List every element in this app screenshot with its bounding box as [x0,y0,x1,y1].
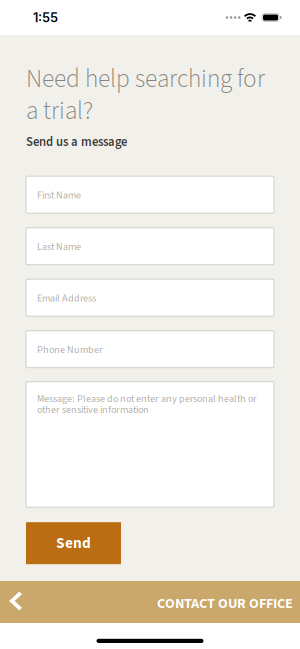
staticText: Send us a message [26,133,127,151]
button[interactable]: Message: Please do not enter any persona… [26,382,274,507]
button[interactable]: Last Name [26,228,274,265]
staticText: Last Name [37,240,81,254]
staticText: First Name [37,188,81,203]
staticText: Need help searching for a trial? [26,61,265,129]
staticText: Message: Please do not enter any persona… [37,392,257,417]
button[interactable]: Email Address [26,279,274,316]
button[interactable]: Phone Number [26,331,274,368]
staticText: Email Address [37,291,96,306]
button[interactable]: First Name [26,176,274,213]
staticText: CONTACT OUR OFFICE [157,593,293,614]
staticText: 1:55 [33,10,58,25]
button[interactable]: CONTACT OUR OFFICE [0,581,300,623]
staticText: Send [56,532,91,554]
staticText: Phone Number [37,343,103,357]
button[interactable]: Send [26,522,121,564]
